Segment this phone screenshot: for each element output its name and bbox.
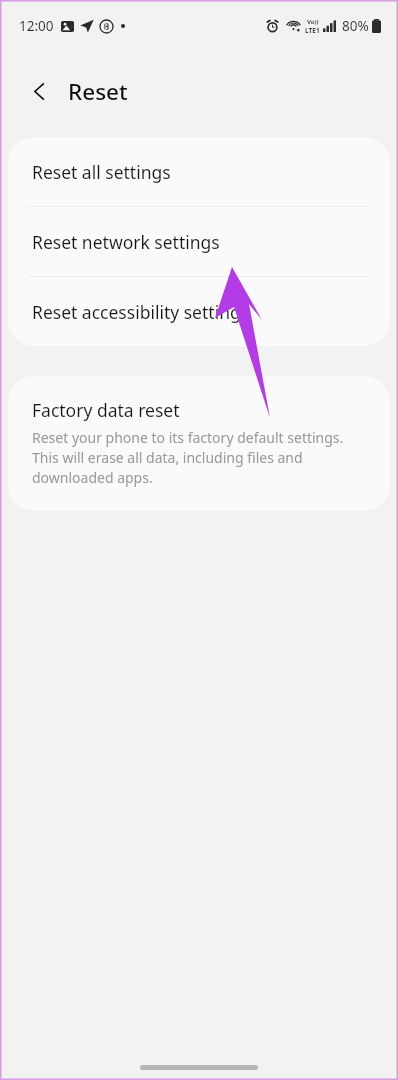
button[interactable]: Back xyxy=(22,74,56,108)
staticText: LTE1 xyxy=(305,26,320,35)
staticText: Reset xyxy=(68,76,128,107)
staticText: 12:00 xyxy=(19,17,54,35)
staticText: Reset accessibility settings xyxy=(32,300,250,324)
button[interactable]: Reset network settings xyxy=(8,207,390,276)
staticText: Reset your phone to its factory default … xyxy=(32,428,368,487)
button[interactable]: Reset all settings xyxy=(8,137,390,206)
button[interactable]: Factory data reset xyxy=(8,376,390,511)
button[interactable]: Reset accessibility settings xyxy=(8,277,390,346)
staticText: Factory data reset xyxy=(32,398,180,422)
staticText: 80% xyxy=(342,17,369,35)
staticText: Reset all settings xyxy=(32,160,171,184)
staticText: Reset network settings xyxy=(32,230,220,254)
staticText: Vo)) xyxy=(307,18,319,26)
